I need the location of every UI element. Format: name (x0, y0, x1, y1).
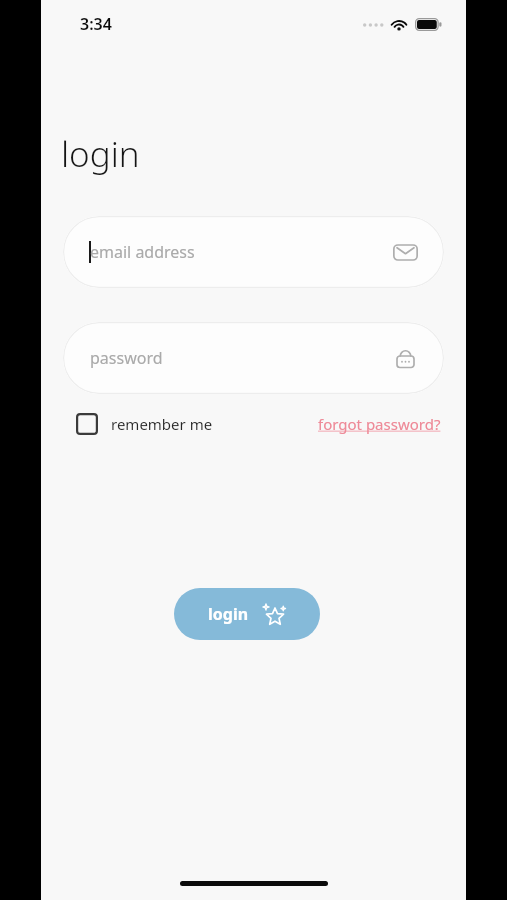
staticText: password (90, 347, 163, 369)
button[interactable]: email address (63, 216, 444, 288)
button[interactable]: password (63, 322, 444, 394)
staticText: remember me (111, 414, 213, 434)
staticText: login (61, 130, 140, 178)
other: Password (392, 345, 418, 371)
staticText: 3:34 (80, 13, 112, 35)
staticText: login (208, 603, 249, 625)
button[interactable]: forgot password? (318, 409, 441, 439)
button[interactable]: login (174, 588, 320, 640)
staticText: forgot password? (318, 414, 441, 434)
button[interactable]: remember me (74, 410, 215, 438)
staticText: email address (90, 241, 195, 263)
other: Email (392, 239, 418, 265)
